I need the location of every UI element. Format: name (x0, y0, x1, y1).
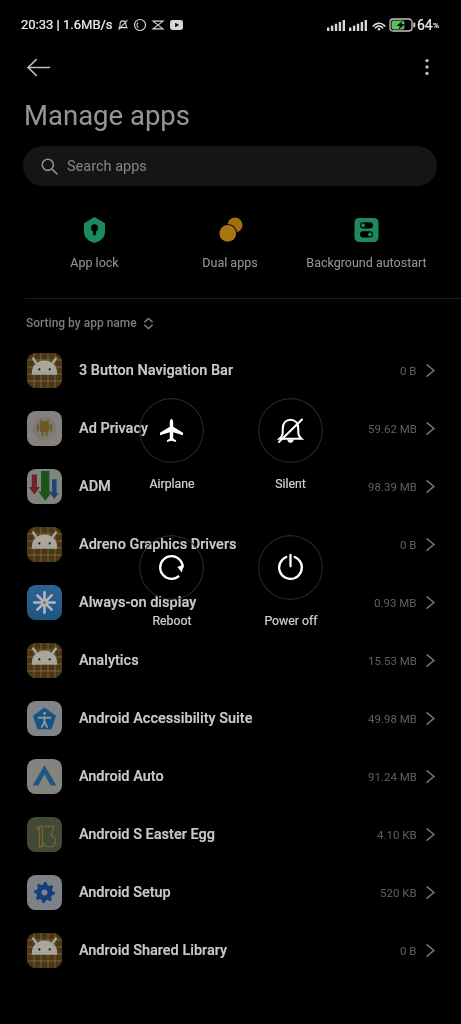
staticText: Android Auto (79, 768, 164, 785)
staticText: 0.93 MB (374, 596, 417, 609)
staticText: % (433, 21, 439, 30)
button[interactable]: Back (18, 47, 58, 87)
staticText: 520 KB (380, 886, 417, 899)
button[interactable]: Adreno Graphics Drivers (0, 515, 461, 573)
staticText: 98.39 MB (368, 480, 417, 493)
button[interactable]: Dual apps (162, 205, 298, 270)
button[interactable]: Always-on display (0, 573, 461, 631)
button[interactable]: Android Setup (0, 863, 461, 921)
staticText: Android Setup (79, 884, 171, 901)
staticText: ADM (79, 478, 111, 495)
staticText: 59.62 MB (368, 422, 417, 435)
staticText: 91.24 MB (368, 770, 417, 783)
staticText: Sorting by app name (26, 316, 137, 330)
staticText: 20:33 | 1.6MB/s (21, 17, 113, 32)
button[interactable]: Ad Privacy (0, 399, 461, 457)
staticText: 0 B (400, 538, 417, 551)
staticText: Adreno Graphics Drivers (79, 536, 237, 553)
button[interactable]: ADM (0, 457, 461, 515)
button[interactable]: Sorting by app name (26, 308, 153, 338)
button[interactable]: Search apps (23, 146, 437, 186)
staticText: Dual apps (202, 255, 258, 270)
button[interactable]: Android Accessibility Suite (0, 689, 461, 747)
button[interactable]: Background autostart (298, 205, 434, 270)
staticText: Android Shared Library (79, 942, 228, 959)
staticText: 49.98 MB (368, 712, 417, 725)
staticText: Power off (264, 614, 318, 628)
button[interactable]: Airplane (139, 398, 204, 463)
staticText: Reboot (152, 614, 192, 628)
button[interactable]: Reboot (139, 535, 204, 600)
staticText: 0 B (400, 944, 417, 957)
staticText: Search apps (67, 158, 147, 175)
button[interactable]: 3 Button Navigation Bar (0, 341, 461, 399)
button[interactable]: Power off (258, 535, 323, 600)
staticText: 15.53 MB (368, 654, 417, 667)
button[interactable]: Android Auto (0, 747, 461, 805)
staticText: Background autostart (306, 255, 427, 270)
staticText: 64 (417, 17, 433, 33)
staticText: Ad Privacy (79, 420, 149, 437)
staticText: Analytics (79, 652, 139, 669)
staticText: 4.10 KB (377, 828, 417, 841)
staticText: Silent (275, 477, 306, 491)
button[interactable]: Analytics (0, 631, 461, 689)
button[interactable]: Android Shared Library (0, 921, 461, 979)
staticText: Android Accessibility Suite (79, 710, 253, 727)
button[interactable]: App lock (26, 205, 162, 270)
staticText: App lock (70, 255, 119, 270)
staticText: Android S Easter Egg (79, 826, 215, 843)
staticText: 0 B (400, 364, 417, 377)
staticText: 3 Button Navigation Bar (79, 362, 234, 379)
button[interactable]: Silent (258, 398, 323, 463)
button[interactable]: Android S Easter Egg (0, 805, 461, 863)
staticText: Airplane (149, 477, 195, 491)
staticText: Manage apps (24, 99, 190, 131)
staticText: Always-on display (79, 594, 197, 611)
button[interactable]: More options (409, 49, 445, 85)
